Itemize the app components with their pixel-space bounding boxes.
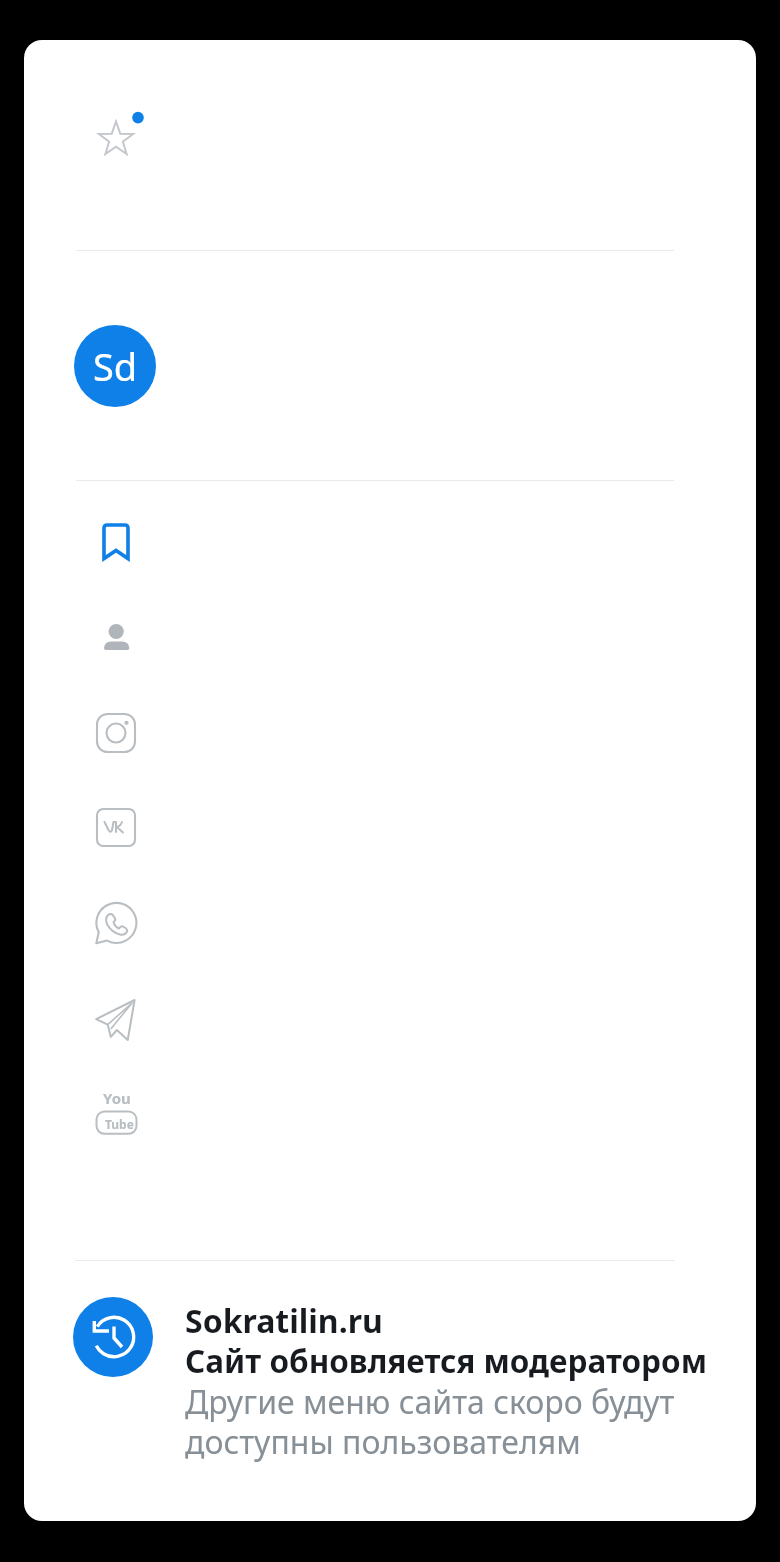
staticText: Сайт обновляется модератором: [185, 1339, 708, 1382]
staticText: Sd: [93, 340, 138, 392]
staticText: доступны пользователям: [185, 1420, 581, 1464]
button[interactable]: [96, 713, 136, 753]
button[interactable]: [94, 900, 140, 946]
button[interactable]: [100, 521, 132, 563]
button[interactable]: Sokratilin.ru: [185, 1299, 383, 1343]
button[interactable]: [73, 1297, 153, 1377]
button[interactable]: [92, 996, 140, 1044]
staticText: Sokratilin.ru: [185, 1299, 383, 1343]
staticText: You: [103, 1088, 131, 1108]
button[interactable]: [88, 104, 144, 160]
button[interactable]: You: [96, 1090, 138, 1136]
staticText: Tube: [105, 1116, 134, 1132]
button[interactable]: [96, 621, 136, 661]
button[interactable]: [96, 808, 136, 847]
button[interactable]: Sd: [74, 325, 156, 407]
staticText: Другие меню сайта скоро будут: [185, 1380, 675, 1424]
